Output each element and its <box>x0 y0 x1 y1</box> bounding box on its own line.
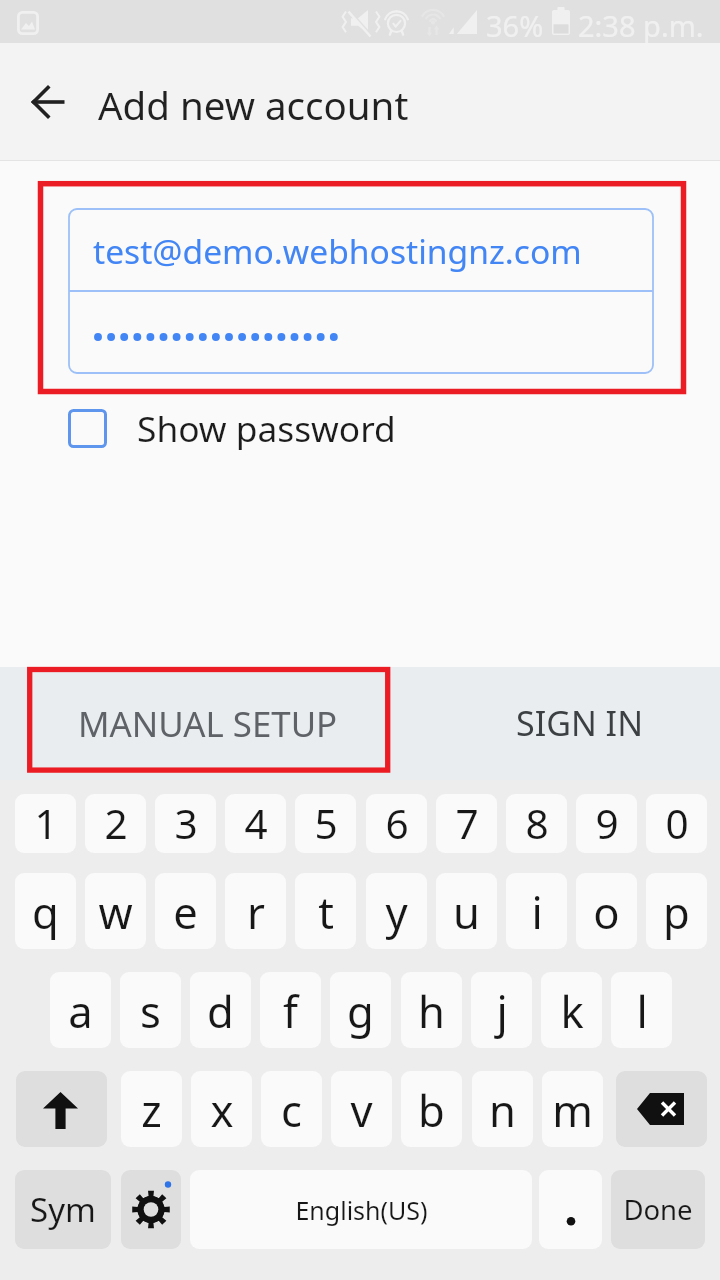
button[interactable]: 1 <box>15 794 76 853</box>
button[interactable]: e <box>155 873 216 949</box>
button[interactable]: English(US) <box>190 1170 532 1249</box>
button[interactable]: SIGN IN <box>428 667 720 773</box>
button[interactable]: 0 <box>646 794 707 853</box>
staticText: r <box>247 882 265 941</box>
staticText: p <box>663 882 690 941</box>
button[interactable]: f <box>260 972 321 1048</box>
staticText: m <box>552 1080 593 1139</box>
button[interactable]: j <box>471 972 532 1048</box>
button[interactable]: Sym <box>15 1170 111 1249</box>
button[interactable]: s <box>120 972 181 1048</box>
staticText: w <box>98 882 133 941</box>
button[interactable]: 3 <box>155 794 216 853</box>
staticText: j <box>496 981 508 1040</box>
staticText: s <box>140 981 161 1040</box>
button[interactable]: w <box>85 873 146 949</box>
button[interactable]: x <box>191 1071 252 1147</box>
staticText: Show password <box>137 404 396 450</box>
button[interactable]: u <box>436 873 497 949</box>
button[interactable]: Period <box>539 1170 602 1249</box>
staticText: k <box>560 981 584 1040</box>
button[interactable]: Done <box>611 1170 705 1249</box>
staticText: 9 <box>595 796 619 851</box>
button[interactable]: 9 <box>576 794 637 853</box>
button[interactable]: 6 <box>366 794 427 853</box>
staticText: SIGN IN <box>516 700 643 746</box>
staticText: y <box>385 882 408 941</box>
staticText: l <box>636 981 648 1040</box>
staticText: g <box>347 981 374 1040</box>
staticText: 3 <box>174 796 198 851</box>
button[interactable]: g <box>330 972 391 1048</box>
staticText: 6 <box>385 796 409 851</box>
staticText: 1 <box>34 796 58 851</box>
button[interactable]: 5 <box>295 794 356 853</box>
button[interactable]: Password <box>69 291 653 373</box>
staticText: z <box>141 1080 162 1139</box>
button[interactable]: Backspace <box>616 1071 707 1147</box>
staticText: v <box>350 1080 373 1139</box>
staticText: x <box>210 1080 234 1139</box>
button[interactable]: b <box>401 1071 462 1147</box>
button[interactable]: Shift <box>16 1071 107 1147</box>
staticText: 8 <box>525 796 549 851</box>
button[interactable]: test@demo.webhostingnz.com <box>69 209 653 291</box>
staticText: English(US) <box>295 1193 428 1227</box>
staticText: test@demo.webhostingnz.com <box>93 228 582 274</box>
button[interactable]: 7 <box>436 794 497 853</box>
staticText: o <box>593 882 620 941</box>
staticText: t <box>318 882 334 941</box>
button[interactable]: o <box>576 873 637 949</box>
staticText: f <box>283 981 298 1040</box>
button[interactable]: 8 <box>506 794 567 853</box>
staticText: 0 <box>665 796 689 851</box>
staticText: c <box>281 1080 302 1139</box>
staticText: h <box>418 981 445 1040</box>
button[interactable]: i <box>506 873 567 949</box>
staticText: e <box>173 882 198 941</box>
button[interactable]: Navigate up <box>16 69 82 135</box>
button[interactable]: v <box>331 1071 392 1147</box>
staticText: Add new account <box>98 79 409 131</box>
button[interactable]: z <box>121 1071 182 1147</box>
button[interactable]: p <box>646 873 707 949</box>
staticText: 2 <box>104 796 128 851</box>
button[interactable]: q <box>15 873 76 949</box>
staticText: 2:38 p.m. <box>578 6 704 45</box>
staticText: 7 <box>455 796 479 851</box>
button[interactable]: Show password <box>68 405 396 451</box>
button[interactable]: t <box>295 873 356 949</box>
staticText: d <box>207 981 234 1040</box>
button[interactable]: c <box>261 1071 322 1147</box>
staticText: u <box>453 882 480 941</box>
staticText: MANUAL SETUP <box>78 700 338 747</box>
button[interactable]: k <box>541 972 602 1048</box>
button[interactable]: h <box>401 972 462 1048</box>
staticText: Sym <box>30 1187 96 1232</box>
button[interactable]: r <box>225 873 286 949</box>
staticText: i <box>531 882 543 941</box>
button[interactable]: m <box>542 1071 603 1147</box>
staticText: a <box>68 981 93 1040</box>
staticText: q <box>32 882 59 941</box>
staticText: b <box>418 1080 445 1139</box>
staticText: n <box>489 1080 516 1139</box>
button[interactable]: 2 <box>85 794 146 853</box>
button[interactable]: d <box>190 972 251 1048</box>
button[interactable]: 4 <box>225 794 286 853</box>
button[interactable]: a <box>50 972 111 1048</box>
staticText: Done <box>623 1191 693 1228</box>
button[interactable]: y <box>366 873 427 949</box>
button[interactable]: l <box>611 972 672 1048</box>
staticText: 5 <box>314 796 338 851</box>
button[interactable]: MANUAL SETUP <box>27 667 389 773</box>
staticText: 4 <box>244 796 268 851</box>
button[interactable]: n <box>472 1071 533 1147</box>
button[interactable]: Keyboard settings <box>121 1170 181 1249</box>
staticText: 36% <box>486 6 544 45</box>
